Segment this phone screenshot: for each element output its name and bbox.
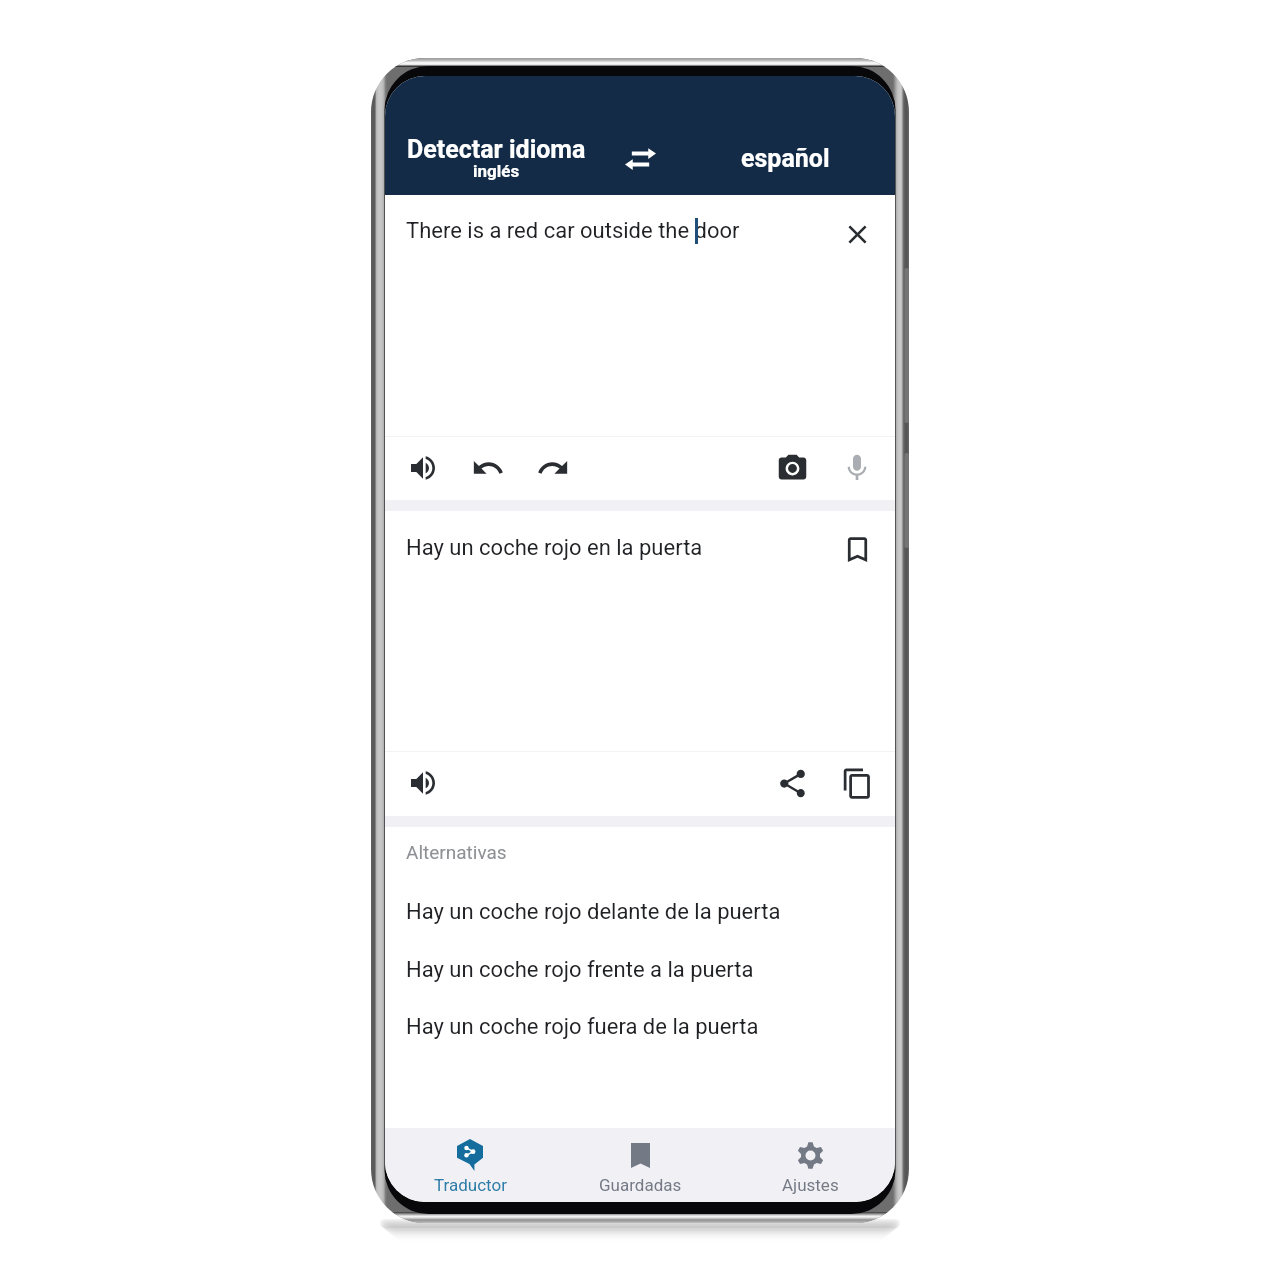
button[interactable]: Escuchar traducción xyxy=(401,761,445,805)
button[interactable]: Guardadas xyxy=(555,1128,725,1202)
staticText: Guardadas xyxy=(599,1175,682,1195)
staticText: Detectar idioma xyxy=(407,135,586,164)
staticText: inglés xyxy=(473,161,520,181)
button[interactable]: Micrófono xyxy=(835,446,879,490)
button[interactable]: Deshacer xyxy=(466,446,510,490)
button[interactable]: Hay un coche rojo delante de la puerta xyxy=(385,888,895,936)
button[interactable]: Rehacer xyxy=(531,446,575,490)
button[interactable]: Hay un coche rojo fuera de la puerta xyxy=(385,1003,895,1051)
staticText: Hay un coche rojo frente a la puerta xyxy=(406,957,754,983)
button[interactable]: Ajustes xyxy=(725,1128,895,1202)
button[interactable]: Compartir xyxy=(770,761,814,805)
button[interactable]: Hay un coche rojo frente a la puerta xyxy=(385,946,895,994)
button[interactable]: Traductor xyxy=(385,1128,555,1202)
staticText: There is a red car outside the door xyxy=(406,218,740,244)
button[interactable]: Guardar traducción xyxy=(835,527,879,571)
button[interactable]: español xyxy=(695,136,875,180)
staticText: Ajustes xyxy=(782,1175,839,1195)
staticText: Alternativas xyxy=(406,841,507,863)
button[interactable]: Intercambiar idiomas xyxy=(618,137,662,181)
button[interactable]: Cámara xyxy=(770,446,814,490)
button[interactable]: Escuchar xyxy=(401,446,445,490)
button[interactable]: Borrar texto xyxy=(835,212,879,256)
staticText: Hay un coche rojo en la puerta xyxy=(406,535,703,561)
staticText: español xyxy=(741,144,830,173)
staticText: Hay un coche rojo delante de la puerta xyxy=(406,899,781,925)
button[interactable]: Detectar idioma xyxy=(391,130,601,188)
button[interactable]: Copiar xyxy=(835,761,879,805)
staticText: Hay un coche rojo fuera de la puerta xyxy=(406,1014,759,1040)
staticText: Traductor xyxy=(434,1175,507,1195)
